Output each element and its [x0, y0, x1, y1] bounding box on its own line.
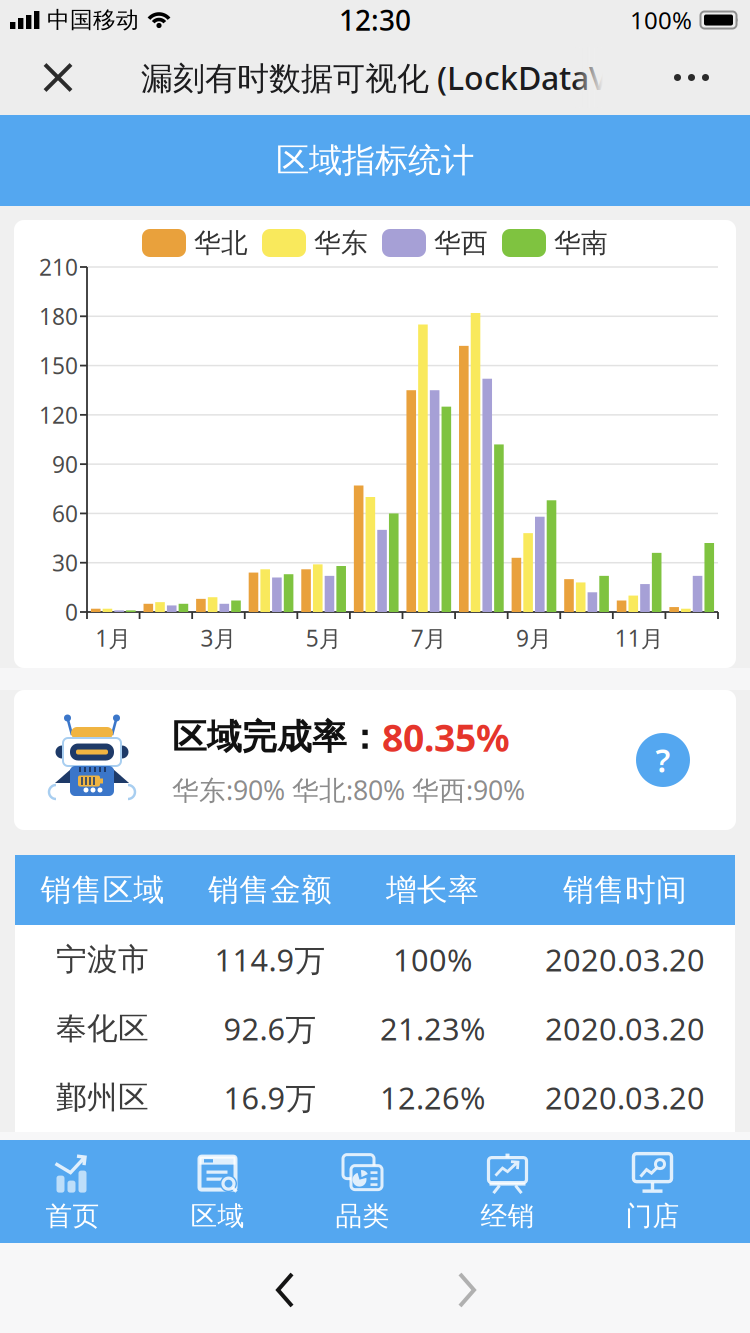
staticText: 16.9万 — [223, 1077, 316, 1118]
staticText: 100% — [630, 4, 692, 36]
staticText: 华东:90% 华北:80% 华西:90% — [172, 772, 525, 807]
staticText: 30 — [52, 548, 78, 578]
staticText: 21.23% — [380, 1008, 485, 1049]
staticText: 区域完成率： — [172, 716, 382, 759]
staticText: 华南 — [554, 227, 608, 259]
staticText: 92.6万 — [223, 1008, 316, 1049]
staticText: 门店 — [625, 1200, 679, 1232]
staticText: 7月 — [411, 623, 447, 653]
staticText: 2020.03.20 — [545, 1008, 705, 1049]
staticText: ? — [655, 739, 670, 781]
staticText: 漏刻有时数据可视化 (LockDataV — [141, 56, 609, 99]
staticText: 90 — [52, 449, 78, 479]
staticText: 2020.03.20 — [545, 1077, 705, 1118]
button[interactable]: 门店 — [580, 1140, 725, 1243]
staticText: 华北 — [194, 227, 248, 259]
staticText: 奉化区 — [56, 1010, 149, 1047]
staticText: 80.35% — [382, 712, 510, 762]
staticText: 150 — [39, 350, 78, 381]
staticText: 1月 — [95, 623, 131, 653]
staticText: 增长率 — [386, 871, 479, 909]
staticText: 60 — [52, 498, 78, 528]
button[interactable]: 经销 — [435, 1140, 580, 1243]
button[interactable]: Back — [251, 1247, 319, 1333]
staticText: 华东 — [314, 227, 368, 259]
staticText: 鄞州区 — [56, 1079, 149, 1116]
staticText: 0 — [65, 597, 78, 627]
staticText: 宁波市 — [56, 941, 149, 978]
staticText: 2020.03.20 — [545, 939, 705, 980]
staticText: 销售区域 — [40, 871, 164, 909]
button[interactable]: 首页 — [0, 1140, 145, 1243]
staticText: 5月 — [306, 623, 342, 653]
button[interactable]: Close — [0, 40, 71, 114]
button[interactable]: 区域 — [145, 1140, 290, 1243]
staticText: 11月 — [615, 623, 664, 653]
staticText: 区域指标统计 — [276, 140, 474, 181]
staticText: 3月 — [200, 623, 236, 653]
staticText: 180 — [39, 301, 78, 331]
staticText: 210 — [39, 252, 78, 282]
staticText: 首页 — [45, 1200, 99, 1232]
button[interactable]: Help — [636, 733, 736, 787]
button[interactable]: 品类 — [290, 1140, 435, 1243]
staticText: 销售金额 — [208, 871, 332, 909]
button[interactable]: More — [674, 44, 750, 111]
staticText: 中国移动 — [47, 6, 139, 34]
staticText: 区域 — [190, 1200, 244, 1232]
staticText: 华西 — [434, 227, 488, 259]
staticText: 114.9万 — [214, 939, 325, 980]
button[interactable]: Forward — [433, 1247, 501, 1333]
staticText: 120 — [39, 400, 78, 430]
staticText: 12:30 — [339, 1, 411, 39]
staticText: 经销 — [480, 1200, 534, 1232]
staticText: 9月 — [516, 623, 552, 653]
staticText: 品类 — [335, 1200, 389, 1232]
staticText: 100% — [393, 939, 472, 980]
staticText: 12.26% — [380, 1077, 485, 1118]
staticText: 销售时间 — [563, 871, 687, 909]
